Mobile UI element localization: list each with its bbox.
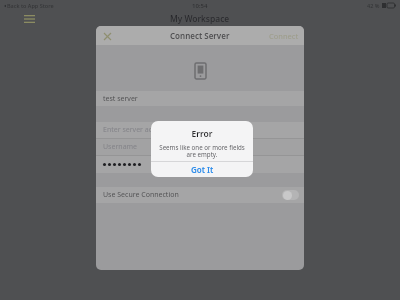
button[interactable]: [96, 156, 304, 173]
button[interactable]: Got It: [151, 162, 253, 177]
staticText: Connect: [269, 31, 299, 41]
staticText: Connect Server: [170, 30, 230, 41]
staticText: test server: [103, 94, 138, 104]
button[interactable]: test server: [96, 91, 304, 106]
staticText: 10:54: [192, 2, 208, 10]
button[interactable]: Username: [96, 139, 304, 155]
staticText: Enter server address: [103, 125, 171, 135]
button[interactable]: Enter server address: [96, 122, 304, 138]
staticText: Seems like one or more fields are empty.: [158, 143, 246, 159]
button[interactable]: Menu: [22, 13, 36, 25]
staticText: Username: [103, 142, 138, 152]
button[interactable]: Use Secure Connection: [96, 187, 304, 203]
staticText: My Workspace: [170, 13, 230, 25]
button[interactable]: Connect: [269, 31, 299, 41]
staticText: Error: [151, 128, 253, 140]
button[interactable]: Use Secure Connection toggle: [282, 190, 299, 200]
staticText: Use Secure Connection: [103, 190, 179, 200]
staticText: 42 %: [367, 2, 380, 9]
staticText: Got It: [191, 164, 214, 175]
button[interactable]: Close: [101, 30, 113, 42]
staticText: Back to App Store: [7, 2, 54, 9]
